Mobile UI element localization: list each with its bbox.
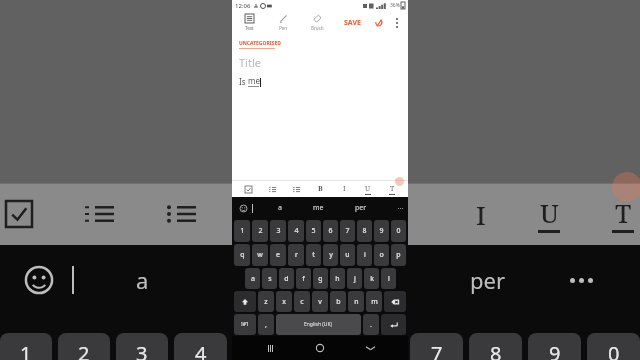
button[interactable]: t	[306, 244, 321, 266]
staticText: U	[365, 184, 371, 194]
button[interactable]: b	[330, 291, 346, 312]
staticText: T	[615, 195, 632, 230]
button[interactable]: a	[245, 268, 260, 289]
button[interactable]: 0	[391, 220, 406, 242]
staticText: 9	[549, 340, 561, 360]
staticText: w	[257, 250, 263, 260]
button[interactable]: e	[270, 244, 286, 266]
button[interactable]: More options	[389, 15, 405, 31]
button[interactable]: n	[348, 291, 364, 312]
staticText: per	[355, 203, 367, 213]
staticText: Pen	[279, 25, 288, 31]
button[interactable]: Text	[232, 11, 266, 34]
button[interactable]: v	[312, 291, 328, 312]
staticText: t	[312, 250, 315, 260]
staticText: c	[300, 297, 304, 307]
button[interactable]: z	[258, 291, 274, 312]
button[interactable]: num	[264, 181, 280, 197]
staticText: y	[329, 250, 333, 260]
button[interactable]: 6	[323, 220, 338, 242]
button[interactable]: Brush	[300, 11, 334, 34]
button[interactable]: me	[307, 200, 330, 216]
staticText: b	[336, 297, 341, 307]
button[interactable]: 8	[357, 220, 372, 242]
staticText: 1	[240, 226, 245, 236]
button[interactable]: Home	[308, 336, 332, 360]
button[interactable]: r	[288, 244, 304, 266]
staticText: 9	[379, 226, 384, 236]
button[interactable]: Hide keyboard	[358, 336, 382, 360]
staticText: me	[248, 75, 260, 86]
button[interactable]: 7	[340, 220, 355, 242]
button[interactable]: c	[294, 291, 310, 312]
button[interactable]: q	[234, 244, 250, 266]
staticText: m	[371, 297, 378, 307]
button[interactable]: 2	[252, 220, 268, 242]
button[interactable]: 4	[288, 220, 304, 242]
button[interactable]: Pen	[266, 11, 300, 34]
staticText: 2	[78, 340, 90, 360]
button[interactable]: h	[330, 268, 345, 289]
button[interactable]: B	[312, 181, 328, 197]
staticText: English (UK)	[304, 321, 333, 328]
button[interactable]: T	[384, 181, 400, 197]
button[interactable]: shift	[234, 291, 256, 312]
staticText: i	[364, 250, 366, 260]
staticText: 0	[396, 226, 401, 236]
button[interactable]: Attach	[371, 15, 387, 31]
button[interactable]: y	[323, 244, 338, 266]
staticText: 36%	[390, 2, 400, 9]
staticText: .	[370, 320, 372, 330]
button[interactable]: d	[279, 268, 294, 289]
button[interactable]: SAVE	[340, 15, 365, 31]
staticText: Is	[239, 76, 248, 87]
staticText: l	[388, 274, 390, 284]
staticText: 3	[276, 226, 281, 236]
button[interactable]: s	[262, 268, 277, 289]
button[interactable]: g	[313, 268, 328, 289]
staticText: h	[335, 274, 340, 284]
staticText: x	[282, 297, 286, 307]
staticText: 4	[195, 340, 207, 360]
button[interactable]: More suggestions	[392, 208, 408, 209]
button[interactable]: w	[252, 244, 268, 266]
button[interactable]: p	[391, 244, 406, 266]
button[interactable]: Emoji	[237, 202, 249, 214]
staticText: SAVE	[344, 18, 361, 28]
button[interactable]: bul	[288, 181, 304, 197]
button[interactable]: 1	[234, 220, 250, 242]
staticText: f	[302, 274, 305, 284]
button[interactable]: U	[360, 181, 376, 197]
button[interactable]: f	[296, 268, 311, 289]
button[interactable]: k	[364, 268, 379, 289]
staticText: g	[318, 274, 323, 284]
staticText: 6	[328, 226, 333, 236]
button[interactable]: j	[347, 268, 362, 289]
button[interactable]: check	[240, 181, 256, 197]
button[interactable]: enter	[381, 314, 406, 335]
button[interactable]: 3	[270, 220, 286, 242]
button[interactable]: .	[363, 314, 379, 335]
staticText: s	[268, 274, 272, 284]
staticText: per	[470, 265, 506, 295]
button[interactable]: x	[276, 291, 292, 312]
button[interactable]: English (UK)	[276, 314, 361, 335]
button[interactable]: m	[366, 291, 382, 312]
button[interactable]: del	[384, 291, 406, 312]
button[interactable]: l	[381, 268, 396, 289]
button[interactable]: o	[374, 244, 389, 266]
staticText: B	[318, 184, 323, 194]
button[interactable]: 5	[306, 220, 321, 242]
button[interactable]: !#1	[234, 314, 256, 335]
staticText: I	[343, 184, 346, 194]
button[interactable]: u	[340, 244, 355, 266]
staticText: 7	[431, 340, 443, 360]
button[interactable]: 9	[374, 220, 389, 242]
button[interactable]: per	[349, 200, 373, 216]
button[interactable]: Recents	[258, 336, 282, 360]
button[interactable]: a	[272, 200, 288, 216]
button[interactable]: UNCATEGORISED	[239, 40, 281, 49]
button[interactable]: I	[336, 181, 352, 197]
button[interactable]: i	[357, 244, 372, 266]
button[interactable]: ,	[258, 314, 274, 335]
